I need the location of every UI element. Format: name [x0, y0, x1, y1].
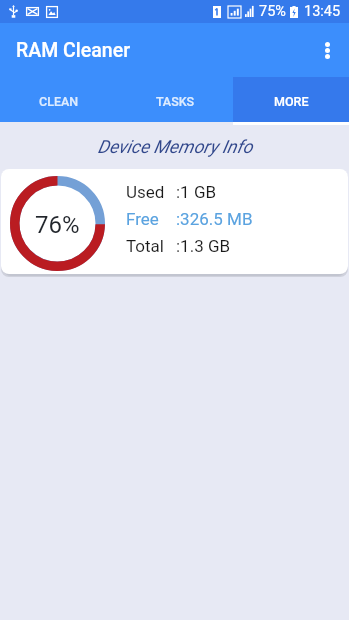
button[interactable]: More options [305, 28, 349, 72]
staticText: Free [126, 209, 159, 229]
staticText: :326.5 MB [176, 209, 253, 229]
staticText: 75% [259, 3, 286, 20]
staticText: Device Memory Info [97, 136, 253, 157]
staticText: Total [126, 236, 164, 256]
staticText: MORE [274, 94, 309, 109]
staticText: :1.3 GB [176, 236, 231, 256]
button[interactable]: CLEAN [0, 77, 117, 122]
staticText: Used [126, 182, 165, 202]
staticText: CLEAN [39, 94, 79, 109]
button[interactable]: 76% [1, 169, 348, 274]
button[interactable]: TASKS [117, 77, 233, 122]
staticText: 13:45 [304, 3, 341, 20]
staticText: RAM Cleaner [16, 39, 130, 62]
staticText: :1 GB [176, 182, 217, 202]
staticText: TASKS [156, 94, 195, 109]
button[interactable]: MORE [233, 77, 349, 122]
staticText: 76% [35, 211, 80, 239]
